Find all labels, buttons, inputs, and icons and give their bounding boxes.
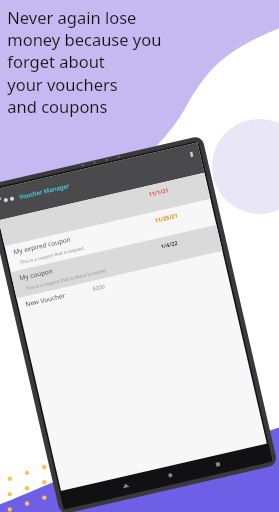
- button[interactable]: Voucher Manager promo screen: [0, 0, 279, 512]
